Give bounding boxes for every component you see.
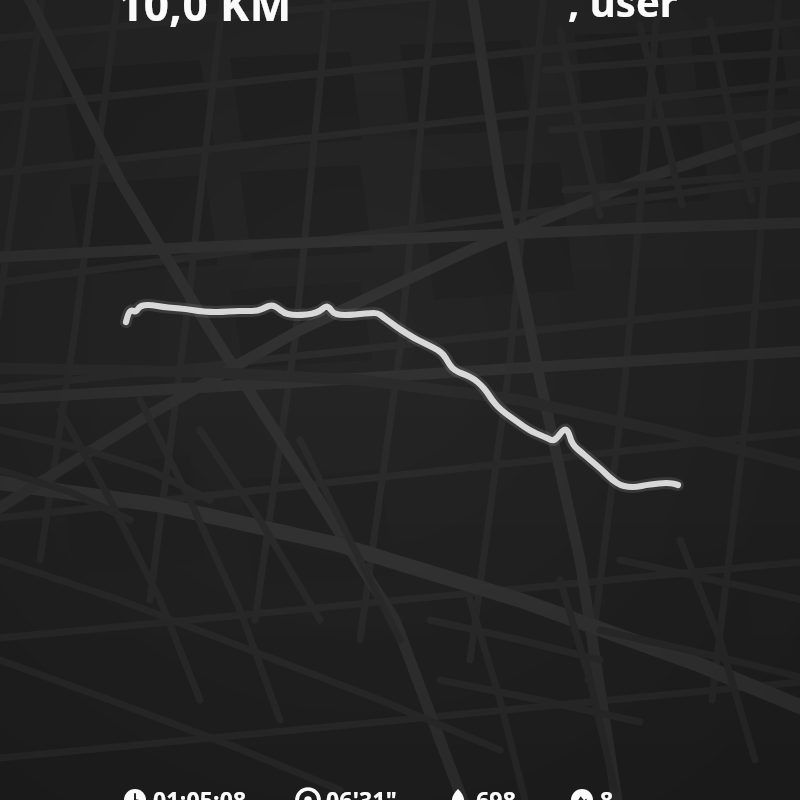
button[interactable]: , user — [568, 0, 678, 28]
staticText: 10,0 KM — [118, 0, 292, 34]
button[interactable]: Duration 01:05:08 — [124, 784, 247, 800]
staticText: , user — [568, 0, 678, 28]
button[interactable]: Pace 6 min 31 s — [297, 784, 397, 800]
button[interactable]: Elevation 8 — [571, 784, 614, 800]
button[interactable]: 10,0 KM — [118, 0, 292, 34]
button[interactable]: Calories 698 — [447, 784, 517, 800]
staticText: 698 — [476, 784, 517, 800]
staticText: 06'31" — [326, 784, 397, 800]
staticText: 8 — [600, 784, 614, 800]
staticText: 01:05:08 — [153, 784, 247, 800]
